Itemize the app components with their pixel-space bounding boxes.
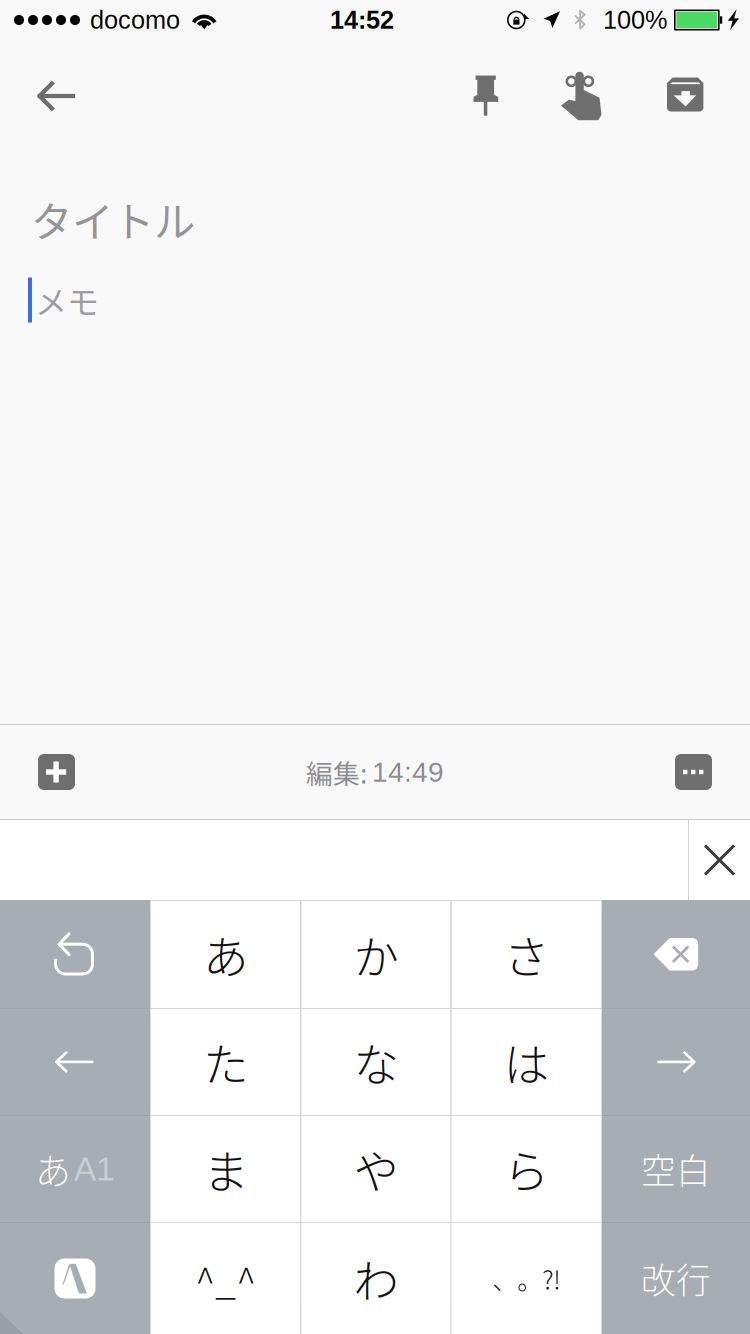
button[interactable]: 改行 [602, 1223, 750, 1334]
button[interactable]: Back [16, 40, 96, 152]
staticText: 、。?! [492, 1260, 560, 1297]
button[interactable]: あ [0, 1116, 150, 1222]
staticText: あ [35, 1143, 71, 1195]
staticText: 14:52 [330, 6, 394, 34]
button[interactable]: ま [151, 1116, 300, 1222]
button[interactable]: Reminder [529, 40, 634, 152]
staticText: さ [504, 922, 549, 987]
button[interactable]: Close keyboard [689, 820, 750, 900]
button[interactable]: Move left [0, 1009, 150, 1115]
staticText: ま [203, 1136, 248, 1202]
button[interactable]: Pin [443, 40, 529, 152]
button[interactable]: Delete [602, 901, 750, 1008]
button[interactable]: な [301, 1009, 451, 1115]
staticText: 空白 [641, 1144, 711, 1194]
staticText: 14:49 [372, 756, 444, 788]
staticText: な [353, 1029, 398, 1095]
staticText: ^_^ [195, 1251, 256, 1306]
staticText: 改行 [641, 1253, 711, 1304]
button[interactable]: Move right [602, 1009, 750, 1115]
staticText: 編集: [306, 753, 367, 791]
button[interactable]: は [452, 1009, 601, 1115]
button[interactable]: Switch keyboard [0, 1223, 150, 1334]
staticText: A1 [74, 1150, 115, 1188]
button[interactable]: Undo [0, 901, 150, 1008]
button[interactable]: ^_^ [151, 1223, 300, 1334]
button[interactable]: か [301, 901, 451, 1008]
staticText: docomo [90, 6, 180, 34]
staticText: わ [353, 1246, 398, 1311]
button[interactable]: Add [38, 754, 75, 790]
button[interactable]: あ [151, 901, 300, 1008]
button[interactable]: Archive [634, 40, 737, 152]
staticText: は [504, 1029, 549, 1095]
button[interactable]: さ [452, 901, 601, 1008]
button[interactable]: ら [452, 1116, 601, 1222]
staticText: 100% [603, 6, 668, 34]
staticText: あ [203, 922, 248, 987]
staticText: か [353, 922, 398, 987]
button[interactable]: た [151, 1009, 300, 1115]
staticText: た [203, 1029, 248, 1095]
staticText: タイトル [31, 189, 195, 249]
button[interactable]: わ [301, 1223, 451, 1334]
button[interactable]: や [301, 1116, 451, 1222]
staticText: ら [504, 1136, 549, 1202]
button[interactable]: More [675, 754, 712, 790]
button[interactable]: 、。?! [452, 1223, 601, 1334]
button[interactable]: 空白 [602, 1116, 750, 1222]
staticText: や [353, 1136, 398, 1202]
staticText: メモ [35, 277, 99, 323]
